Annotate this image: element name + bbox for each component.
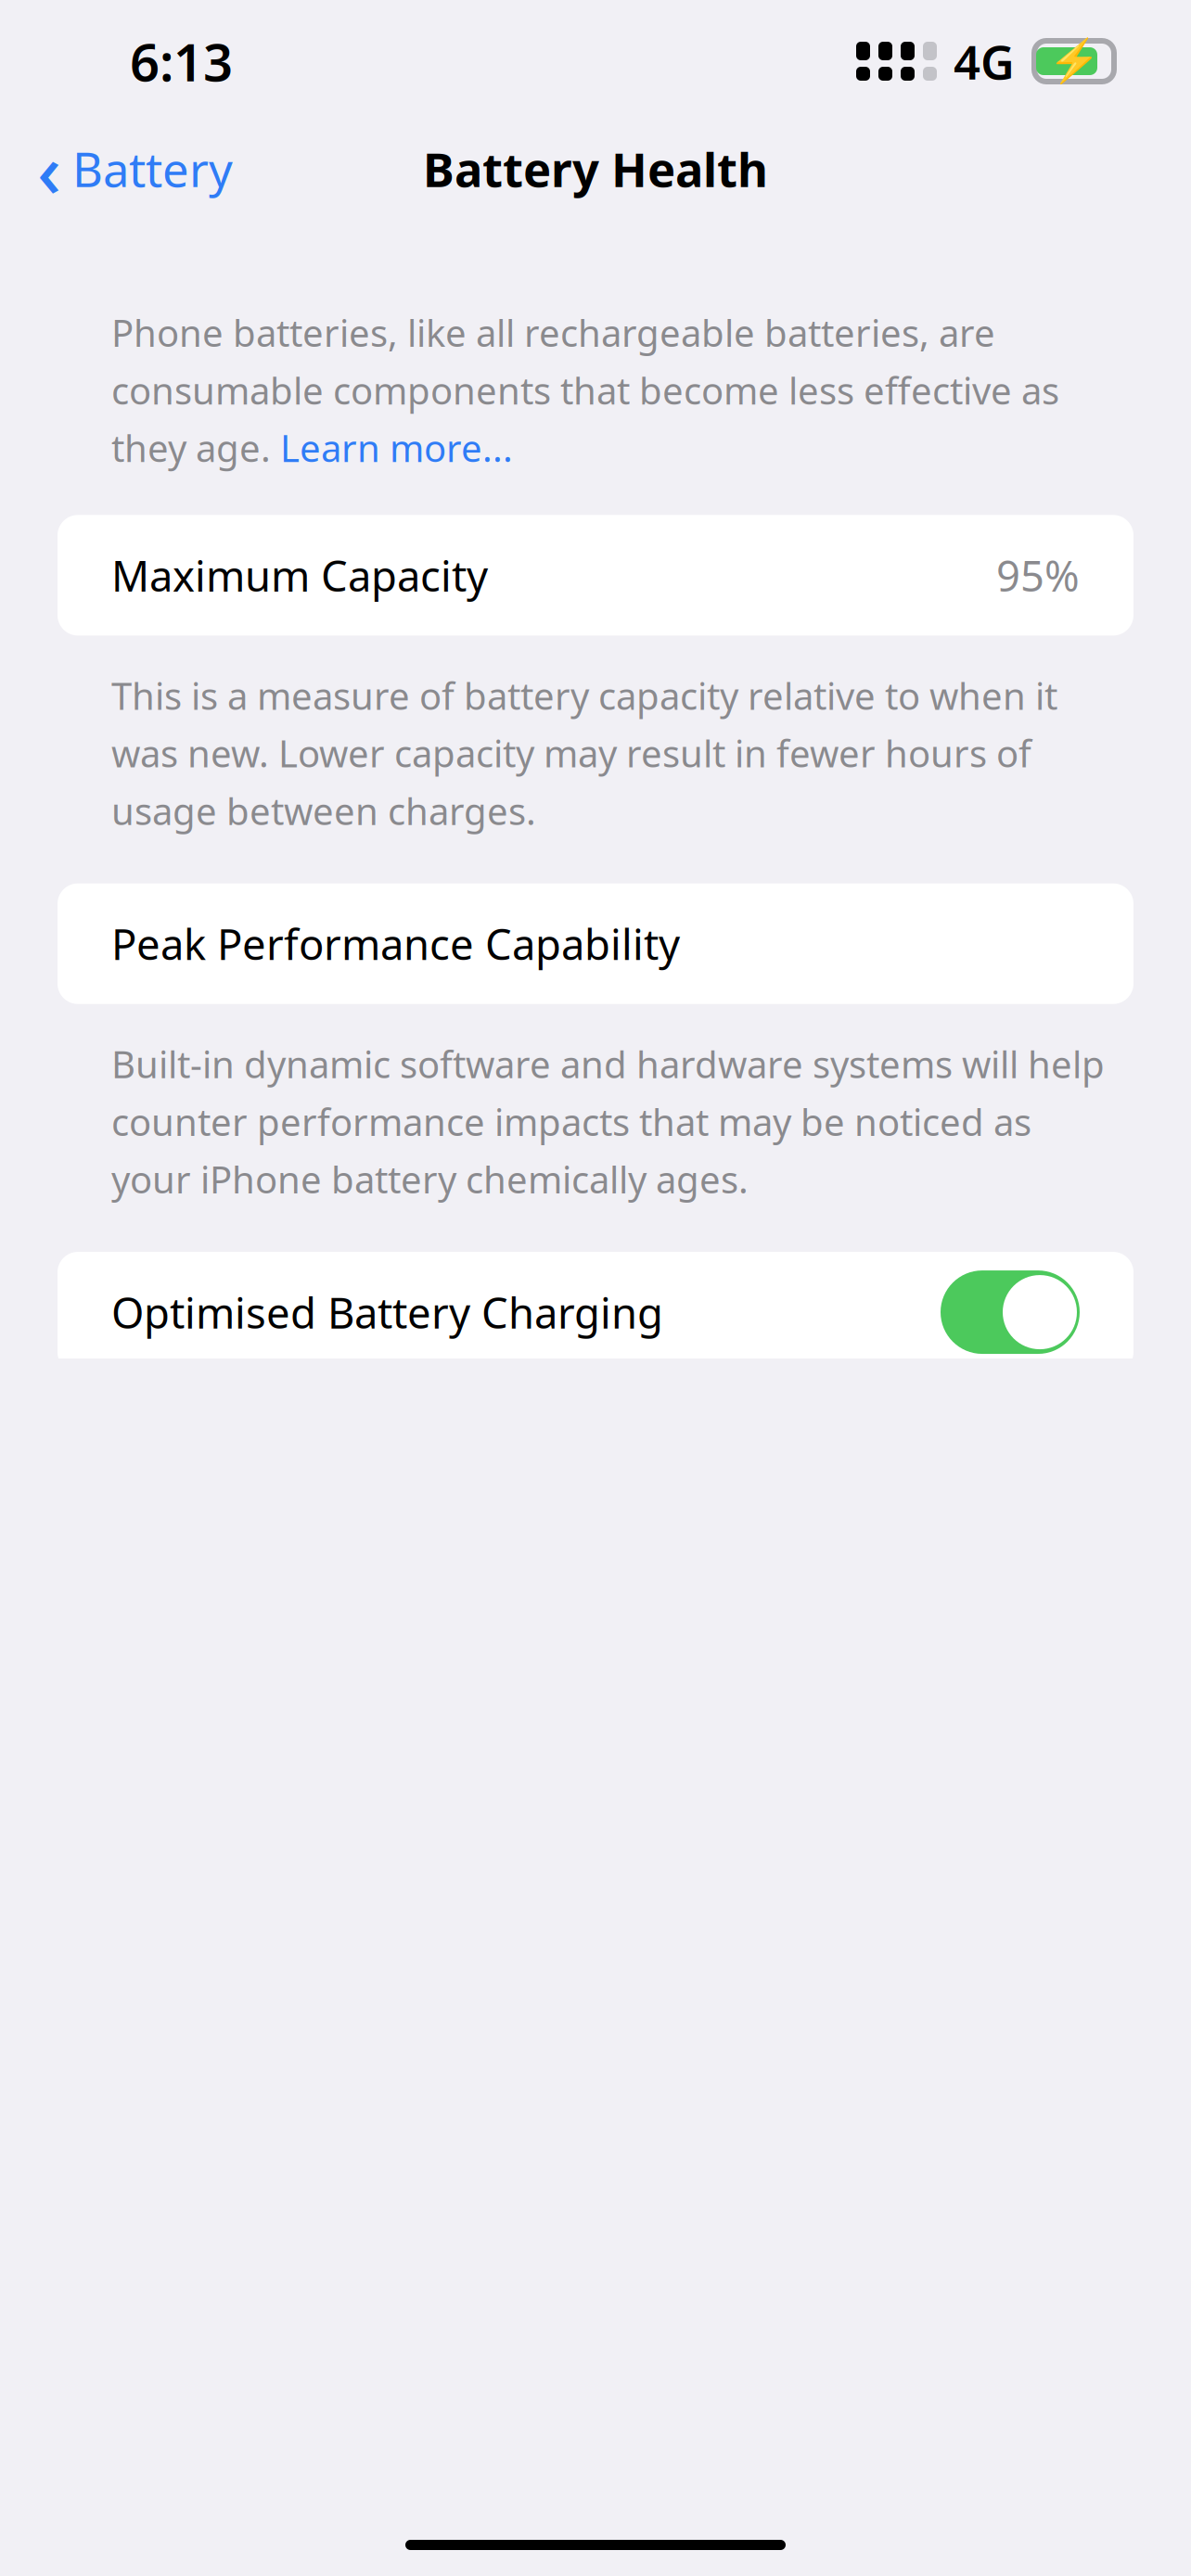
staticText: ⚡ — [1048, 37, 1100, 85]
staticText: Maximum Capacity — [111, 547, 488, 603]
staticText: was new. Lower capacity may result in fe… — [111, 728, 1031, 778]
staticText: usage between charges. — [111, 786, 536, 835]
staticText: Optimised Battery Charging — [111, 1284, 663, 1340]
staticText: Battery — [72, 138, 233, 200]
staticText: they age. — [111, 423, 280, 472]
staticText: ‹ — [37, 120, 61, 218]
staticText: 95% — [996, 547, 1080, 603]
staticText: Learn more... — [280, 423, 513, 472]
staticText: 4G — [954, 30, 1015, 92]
staticText: Built-in dynamic software and hardware s… — [111, 1039, 1105, 1088]
button[interactable]: Maximum Capacity — [58, 515, 1133, 636]
button[interactable]: Optimised Battery Charging — [58, 1252, 1133, 1372]
staticText: consumable components that become less e… — [111, 365, 1059, 415]
staticText: Phone batteries, like all rechargeable b… — [111, 308, 995, 357]
staticText: your iPhone battery chemically ages. — [111, 1154, 749, 1204]
staticText: This is a measure of battery capacity re… — [111, 671, 1057, 720]
staticText: Battery Health — [423, 138, 768, 200]
button[interactable]: ‹ — [0, 110, 233, 227]
button[interactable]: Peak Performance Capability — [58, 883, 1133, 1004]
staticText: Peak Performance Capability — [111, 916, 680, 972]
staticText: counter performance impacts that may be … — [111, 1097, 1031, 1146]
staticText: 6:13 — [130, 27, 233, 96]
button[interactable]: Learn more... — [280, 423, 513, 472]
